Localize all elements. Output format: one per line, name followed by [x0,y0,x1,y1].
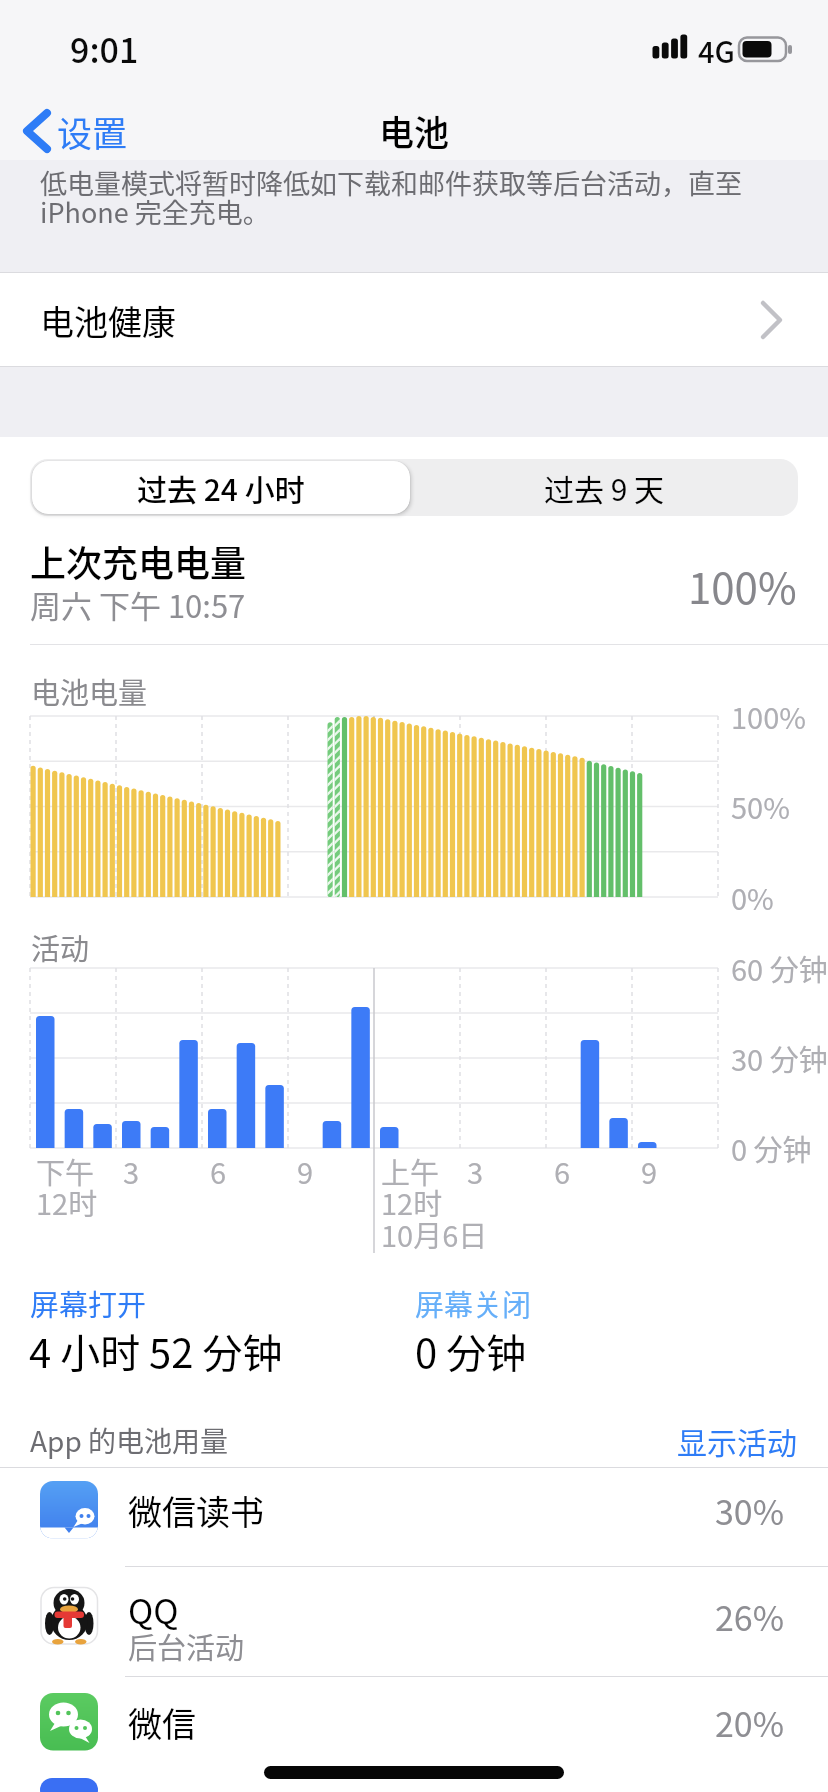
staticText: 屏幕打开 [30,1282,147,1324]
staticText: 6 [210,1150,227,1192]
staticText: 过去 24 小时 [137,466,305,509]
button[interactable] [660,1410,810,1470]
staticText: 上午 [381,1150,440,1192]
staticText: 低电量模式将暂时降低如下载和邮件获取等后台活动，直至 [40,163,742,202]
staticText: 20% [715,1698,785,1747]
button[interactable] [10,100,140,160]
staticText: 后台活动 [128,1625,245,1667]
staticText: 电池电量 [31,670,148,712]
staticText: 设置 [57,106,128,157]
staticText: 9 [641,1150,658,1192]
button[interactable] [410,461,796,514]
staticText: 电池 [379,105,450,156]
staticText: 26% [715,1592,785,1641]
staticText: 电池健康 [40,296,176,345]
staticText: 下午 [36,1150,95,1192]
staticText: 过去 9 天 [544,466,665,509]
staticText: 100% [688,555,797,616]
staticText: 10月6日 [381,1213,488,1255]
staticText: 0% [731,876,774,918]
staticText: 100% [731,695,806,737]
staticText: 4 小时 52 分钟 [29,1322,283,1380]
staticText: 微信读书 [128,1486,264,1535]
staticText: 60 分钟 [731,947,828,989]
staticText: 0 分钟 [731,1127,812,1169]
staticText: 30% [715,1486,785,1535]
staticText: 6 [554,1150,571,1192]
staticText: App 的电池用量 [30,1420,229,1461]
button[interactable] [0,1567,828,1676]
staticText: QQ [128,1585,179,1634]
staticText: 微信 [128,1698,196,1747]
button[interactable] [0,1468,828,1566]
button[interactable] [32,461,410,514]
staticText: 3 [123,1150,140,1192]
staticText: 4G [698,29,735,71]
staticText: 50% [731,785,790,827]
staticText: 0 分钟 [415,1322,527,1380]
staticText: 周六 下午 10:57 [30,582,246,627]
staticText: 30 分钟 [731,1037,828,1079]
staticText: 12时 [36,1181,98,1223]
button[interactable] [0,1677,828,1786]
button[interactable] [0,273,828,367]
staticText: 9 [297,1150,314,1192]
staticText: 活动 [31,926,90,968]
staticText: iPhone 完全充电。 [40,192,270,231]
staticText: 3 [467,1150,484,1192]
staticText: 12时 [381,1181,443,1223]
staticText: 屏幕关闭 [415,1282,532,1324]
staticText: 显示活动 [677,1419,797,1462]
staticText: 上次充电电量 [30,535,247,587]
staticText: 9:01 [70,24,139,73]
